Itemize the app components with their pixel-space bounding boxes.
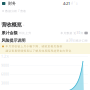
staticText: 近30日统计口径 [66,39,88,42]
staticText: 环比上升 [19,31,31,35]
staticText: ıl ˜ ▯ [71,2,77,5]
staticText: 营收概览 [1,21,21,28]
staticText: 建议查看明细报表以了解具体原因和趋势走向变化 [5,49,71,53]
staticText: 本月数据 近30日 [60,31,83,35]
staticText: 9000 [1,64,9,67]
staticText: 6000 [1,73,9,76]
staticText: 数据分析 / 营收 [5,9,26,13]
staticText: 4:21 [63,1,70,6]
staticText: 本月营收较上月小幅下降，请留意相关指标 [5,45,62,48]
staticText: › [23,22,24,27]
button[interactable]: 筛选 [84,32,88,34]
staticText: 3000 [1,82,9,85]
staticText: 累计金额 [1,30,17,35]
staticText: 财务 [8,1,16,6]
staticText: 风险提示说明 [1,38,25,43]
staticText: 1.2万 [1,55,9,58]
